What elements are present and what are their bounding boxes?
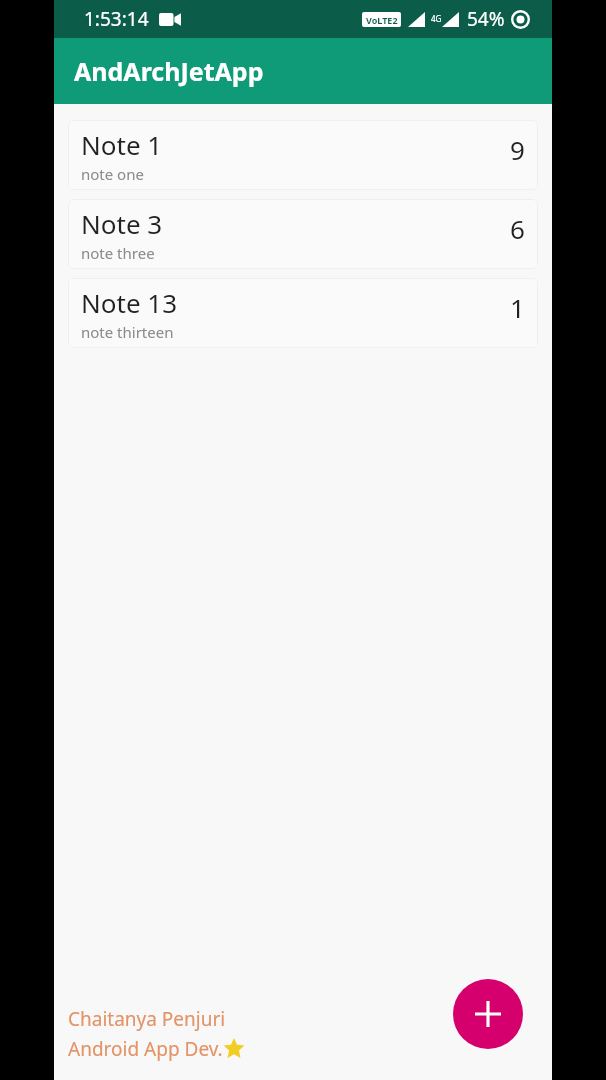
staticText: Android App Dev. (68, 1036, 223, 1062)
staticText: 9 (510, 132, 525, 167)
button[interactable]: Add note (453, 979, 523, 1049)
staticText: Note 3 (81, 206, 163, 241)
staticText: Chaitanya Penjuri (68, 1006, 226, 1032)
staticText: 4G (431, 13, 442, 24)
button[interactable]: Note 3 (68, 199, 538, 269)
staticText: 1:53:14 (84, 6, 149, 32)
staticText: 54% (467, 6, 505, 32)
staticText: 6 (510, 211, 525, 246)
staticText: VoLTE2 (366, 14, 398, 26)
staticText: note thirteen (81, 322, 174, 342)
staticText: note three (81, 243, 155, 263)
staticText: AndArchJetApp (74, 54, 264, 88)
staticText: Note 13 (81, 285, 178, 320)
button[interactable]: Note 1 (68, 120, 538, 190)
staticText: Note 1 (81, 127, 163, 162)
button[interactable]: Note 13 (68, 278, 538, 348)
staticText: note one (81, 164, 144, 184)
staticText: 1 (510, 290, 525, 325)
